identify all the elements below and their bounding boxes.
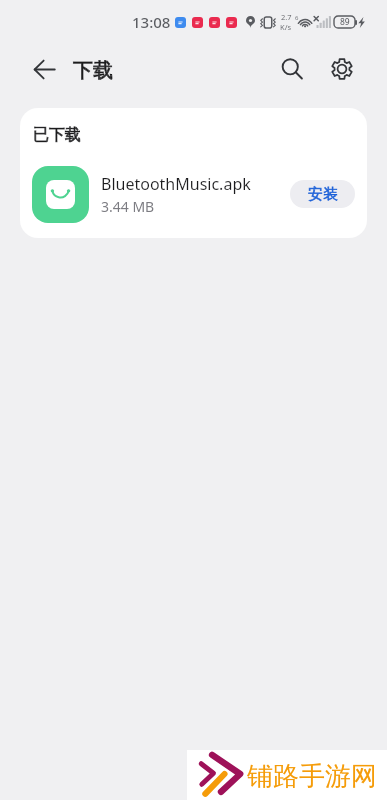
button[interactable]: Search (269, 46, 315, 92)
button[interactable]: Settings (319, 46, 365, 92)
button[interactable]: Back (21, 46, 67, 92)
button[interactable]: BluetoothMusic.apk (20, 158, 367, 230)
button[interactable]: 安装 (290, 180, 355, 208)
staticText: 13:08 (132, 12, 171, 32)
staticText: 3.44 MB (101, 197, 155, 216)
staticText: 2.7 (281, 12, 292, 22)
staticText: 安装 (308, 185, 338, 204)
staticText: 铺路手游网 (247, 760, 377, 793)
staticText: BluetoothMusic.apk (101, 173, 251, 195)
staticText: 已下载 (33, 125, 81, 145)
staticText: 89 (340, 16, 350, 28)
staticText: 6 (295, 14, 299, 22)
staticText: 下载 (73, 58, 113, 83)
staticText: 下载 (73, 58, 113, 83)
staticText: 已下载 (33, 125, 81, 145)
staticText: K/s (280, 22, 292, 32)
staticText: 安装 (308, 185, 338, 204)
